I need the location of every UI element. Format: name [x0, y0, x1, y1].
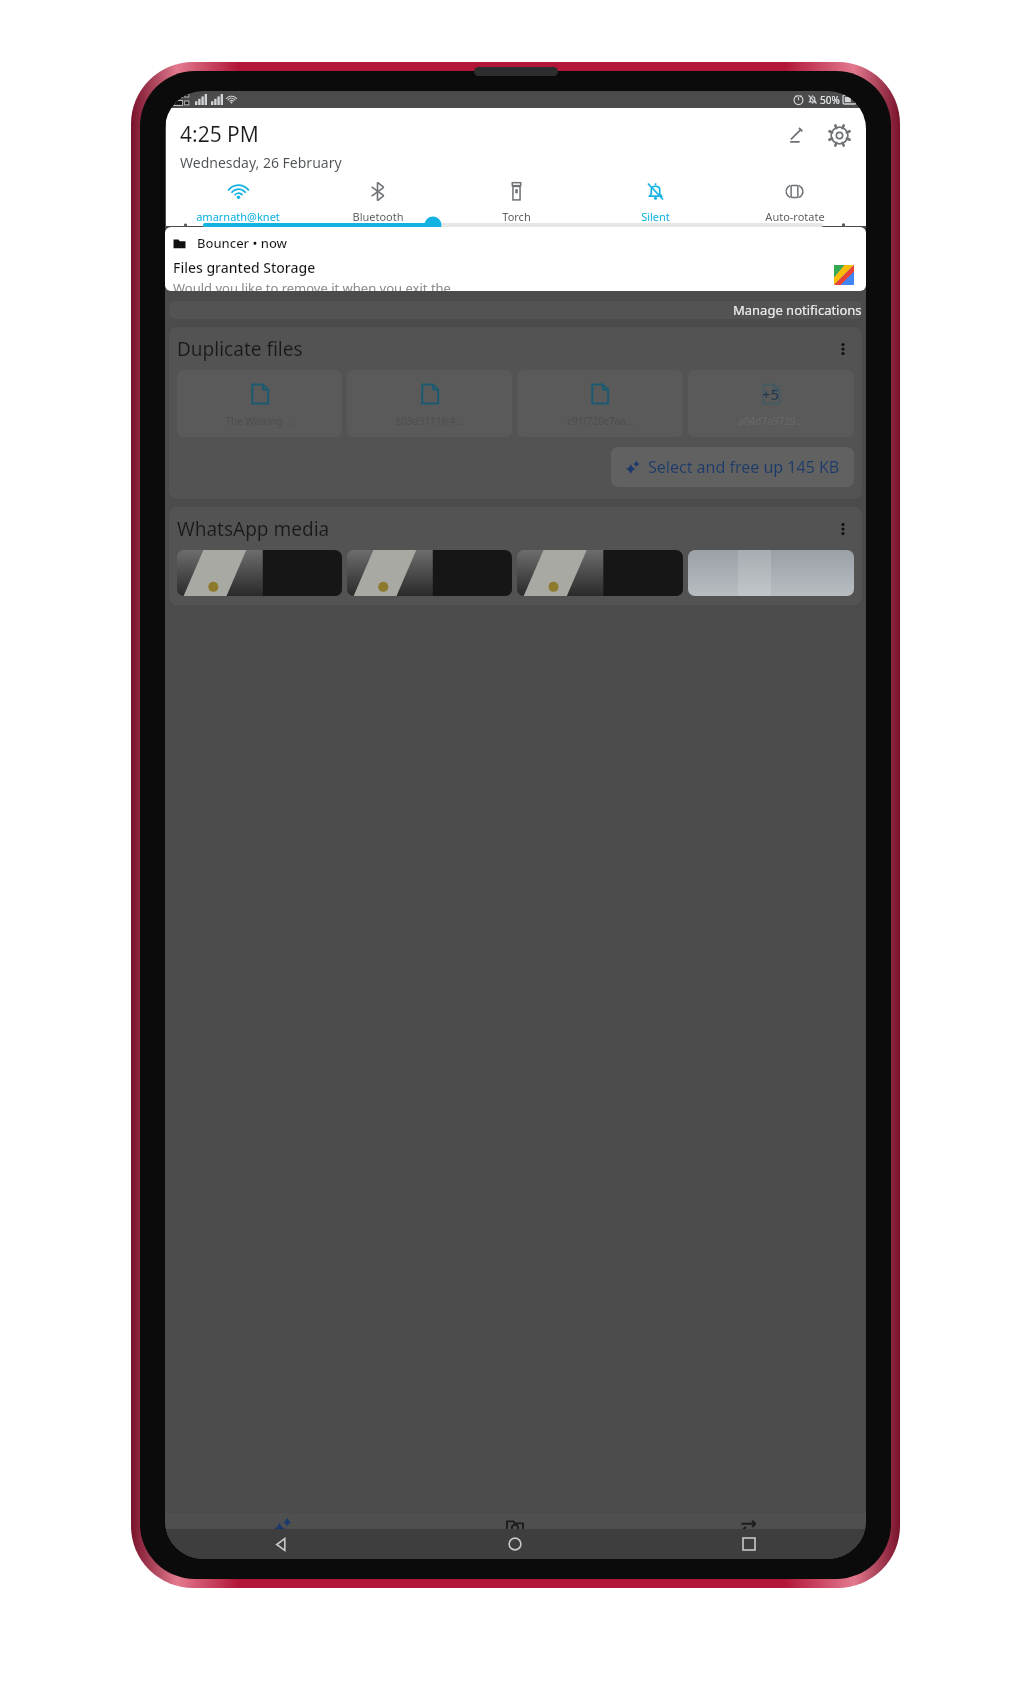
staticText: Torch [502, 209, 531, 224]
staticText: Clean [263, 1541, 300, 1559]
button[interactable]: Share [632, 1517, 866, 1559]
button[interactable]: More options [832, 518, 854, 540]
button[interactable]: Silent [586, 179, 725, 224]
button[interactable]: Back [165, 1529, 398, 1559]
button[interactable]: Clean [165, 1517, 398, 1559]
staticText: 4:25 PM [180, 120, 259, 149]
button[interactable]: Bouncer • now [165, 227, 866, 291]
staticText: a04d7a9729... [738, 414, 804, 428]
staticText: Browse [491, 1541, 540, 1559]
staticText: 803d3111fc4... [395, 414, 464, 428]
staticText: +5 [762, 384, 780, 404]
button[interactable]: Recents [632, 1529, 866, 1559]
staticText: Bluetooth [352, 209, 404, 224]
staticText: Select and free up 145 KB [648, 456, 840, 478]
staticText: Files granted Storage [173, 258, 316, 277]
button[interactable]: Settings [824, 120, 854, 150]
button[interactable]: Browse [398, 1517, 632, 1559]
button[interactable]: c91f720c7aa... [517, 370, 683, 437]
staticText: Share [730, 1541, 768, 1559]
staticText: c91f720c7aa... [567, 414, 634, 428]
staticText: The Walking ... [225, 414, 294, 428]
button[interactable]: The Walking ... [177, 370, 342, 437]
staticText: 50% [820, 93, 840, 107]
staticText: Bouncer • now [197, 234, 288, 252]
button[interactable]: Bluetooth [308, 179, 447, 224]
button[interactable]: +5 [688, 370, 854, 437]
staticText: amarnath@knet [196, 209, 280, 224]
button[interactable]: 803d3111fc4... [347, 370, 512, 437]
staticText: Duplicate files [177, 336, 303, 362]
staticText: Manage notifications [733, 301, 862, 319]
button[interactable]: Photo [347, 550, 512, 596]
button[interactable]: Edit [780, 120, 810, 150]
button[interactable]: Select and free up 145 KB [611, 447, 854, 487]
staticText: Auto-rotate [765, 209, 825, 224]
button[interactable]: Auto-rotate [725, 179, 864, 224]
staticText: Silent [641, 209, 670, 224]
button[interactable]: Photo [688, 550, 854, 596]
button[interactable]: Brightness [205, 224, 821, 226]
button[interactable]: Torch [447, 179, 586, 224]
button[interactable]: amarnath@knet [168, 179, 308, 224]
staticText: Would you like to remove it when you exi… [173, 279, 462, 291]
staticText: WhatsApp media [177, 516, 330, 542]
button[interactable]: Home [398, 1529, 632, 1559]
button[interactable]: Photo [517, 550, 683, 596]
staticText: Wednesday, 26 February [180, 153, 342, 172]
button[interactable]: Photo [177, 550, 342, 596]
button[interactable]: More options [832, 338, 854, 360]
